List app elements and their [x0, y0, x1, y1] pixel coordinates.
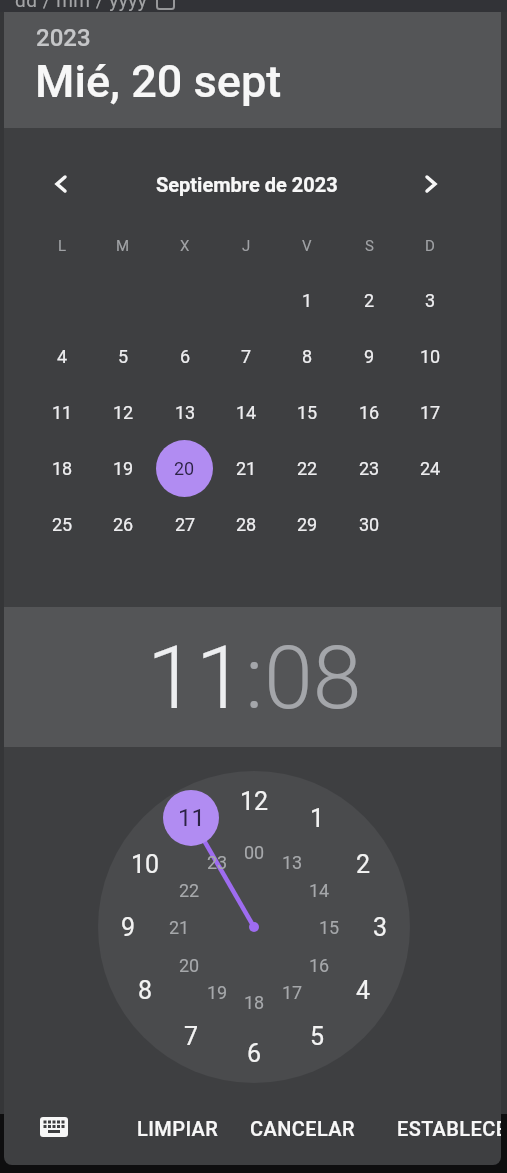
staticText: 19	[207, 982, 228, 1003]
button[interactable]: 17	[272, 974, 312, 1010]
button[interactable]: 12	[232, 779, 276, 823]
button[interactable]: 9	[345, 332, 393, 380]
button[interactable]: 8	[123, 968, 167, 1012]
button[interactable]: 14	[222, 388, 270, 436]
button[interactable]: 14	[299, 872, 339, 908]
button[interactable]: 21	[222, 444, 270, 492]
button[interactable]: 20	[156, 440, 213, 497]
staticText: 8	[302, 346, 313, 367]
button[interactable]: 18	[38, 444, 86, 492]
button[interactable]: 7	[222, 332, 270, 380]
button[interactable]: LIMPIAR	[113, 1104, 243, 1152]
button[interactable]: 12	[99, 388, 147, 436]
button[interactable]: CANCELAR	[232, 1104, 372, 1152]
button[interactable]: 13	[161, 388, 209, 436]
staticText: 9	[364, 346, 375, 367]
staticText: 11	[52, 402, 73, 423]
button[interactable]: 13	[272, 844, 312, 880]
staticText: 12	[113, 402, 134, 423]
staticText: 2	[364, 290, 375, 311]
staticText: ESTABLECER	[397, 1117, 501, 1140]
staticText: 22	[179, 880, 200, 901]
button[interactable]: 27	[161, 500, 209, 548]
button[interactable]: 4	[38, 332, 86, 380]
staticText: 23	[207, 852, 228, 873]
button[interactable]: 2	[341, 842, 385, 886]
staticText: D	[425, 237, 435, 255]
button[interactable]: 9	[106, 905, 150, 949]
button[interactable]: 11	[38, 388, 86, 436]
button[interactable]	[30, 1103, 78, 1151]
staticText: 8	[138, 976, 153, 1005]
button[interactable]: ESTABLECER	[379, 1104, 501, 1152]
button[interactable]: 23	[345, 444, 393, 492]
button[interactable]: 08	[264, 626, 362, 729]
staticText: 30	[359, 514, 380, 535]
staticText: CANCELAR	[250, 1117, 355, 1140]
button[interactable]: 11	[147, 626, 245, 729]
button[interactable]: 1	[295, 796, 339, 840]
staticText: S	[365, 237, 374, 255]
button[interactable]: 15	[309, 909, 349, 945]
button[interactable]: 17	[406, 388, 454, 436]
staticText: 17	[420, 402, 441, 423]
button[interactable]: 6	[161, 332, 209, 380]
button[interactable]: 19	[99, 444, 147, 492]
button[interactable]: 5	[99, 332, 147, 380]
button[interactable]: 4	[341, 968, 385, 1012]
staticText: 16	[309, 955, 330, 976]
button[interactable]: Mié, 20 sept	[35, 55, 282, 108]
button[interactable]: 5	[295, 1014, 339, 1058]
button[interactable]: 2	[345, 276, 393, 324]
button[interactable]	[407, 160, 455, 208]
button[interactable]: 19	[197, 974, 237, 1010]
button[interactable]: 3	[358, 905, 402, 949]
button[interactable]: 18	[234, 984, 274, 1020]
staticText: 17	[282, 982, 303, 1003]
staticText: 21	[169, 917, 190, 938]
staticText: 1	[302, 290, 313, 311]
staticText: 29	[297, 514, 318, 535]
staticText: 23	[359, 458, 380, 479]
button[interactable]: 00	[234, 834, 274, 870]
button[interactable]: 15	[283, 388, 331, 436]
staticText: 4	[356, 976, 371, 1005]
button[interactable]: 16	[299, 947, 339, 983]
button[interactable]: 28	[222, 500, 270, 548]
staticText: 7	[241, 346, 252, 367]
button[interactable]: 10	[406, 332, 454, 380]
button[interactable]: 1	[283, 276, 331, 324]
staticText: 5	[310, 1022, 325, 1051]
button[interactable]: 16	[345, 388, 393, 436]
button[interactable]: 11	[169, 796, 213, 840]
staticText: 00	[244, 842, 265, 863]
button[interactable]: 3	[406, 276, 454, 324]
button[interactable]: 24	[406, 444, 454, 492]
button[interactable]: 29	[283, 500, 331, 548]
button[interactable]: 20	[169, 947, 209, 983]
button[interactable]: 8	[283, 332, 331, 380]
button[interactable]	[37, 160, 85, 208]
staticText: 15	[319, 917, 340, 938]
button[interactable]: 22	[169, 872, 209, 908]
button[interactable]: 25	[38, 500, 86, 548]
button[interactable]: 7	[169, 1014, 213, 1058]
staticText: 5	[118, 346, 129, 367]
button[interactable]: 26	[99, 500, 147, 548]
staticText: J	[242, 237, 251, 255]
staticText: dd / mm / yyyy	[15, 0, 148, 11]
button[interactable]: 10	[123, 842, 167, 886]
button[interactable]: 30	[345, 500, 393, 548]
button[interactable]: 22	[283, 444, 331, 492]
staticText: 28	[236, 514, 257, 535]
staticText: LIMPIAR	[137, 1117, 219, 1140]
staticText: 22	[297, 458, 318, 479]
staticText: Septiembre de 2023	[156, 173, 338, 196]
staticText: 1	[310, 804, 325, 833]
button[interactable]: 2023	[36, 24, 91, 52]
button[interactable]: 21	[159, 909, 199, 945]
button[interactable]: 23	[197, 844, 237, 880]
staticText: 21	[236, 458, 257, 479]
button[interactable]: 6	[232, 1031, 276, 1075]
staticText: 19	[113, 458, 134, 479]
